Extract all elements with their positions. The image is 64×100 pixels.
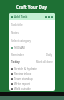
button[interactable]: Write report: [11, 81, 53, 86]
button[interactable]: Walk outside: [11, 86, 53, 91]
staticText: Reminder: [11, 53, 24, 57]
staticText: Walk outside: [14, 87, 31, 91]
staticText: Review inbox: [14, 72, 32, 76]
staticText: Stretch & hydrate: [14, 67, 37, 71]
staticText: Write report: [14, 82, 31, 86]
staticText: Team standup: [14, 77, 33, 81]
staticText: Mark all done: [36, 60, 53, 64]
staticText: Daily: [46, 53, 53, 57]
staticText: Craft Your Day: [16, 4, 47, 10]
staticText: Notes: [11, 31, 19, 35]
staticText: Task title: [11, 23, 23, 27]
staticText: Today: [11, 60, 20, 64]
button[interactable]: Team standup: [11, 76, 53, 81]
button[interactable]: Craft Your Day: [16, 4, 47, 10]
staticText: Select category: [11, 39, 31, 43]
staticText: Add Task: [14, 15, 28, 19]
button[interactable]: Review inbox: [11, 71, 53, 76]
button[interactable]: Add Task: [11, 13, 53, 20]
staticText: 9:00 AM: [14, 46, 25, 50]
button[interactable]: 9:00 AM: [11, 46, 53, 50]
button[interactable]: Stretch & hydrate: [11, 66, 53, 71]
